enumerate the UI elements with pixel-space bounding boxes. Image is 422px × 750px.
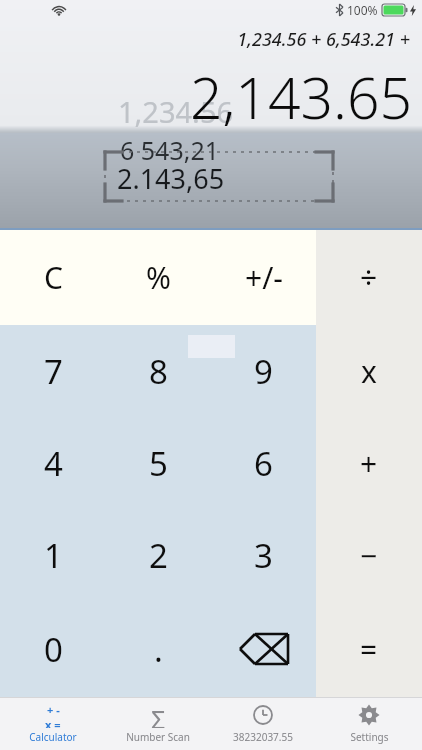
staticText: 9 [254, 349, 273, 394]
staticText: 2,143.65 [0, 58, 412, 136]
button[interactable]: x [316, 325, 422, 417]
staticText: 2 [149, 533, 168, 578]
staticText: . [154, 627, 163, 672]
staticText: 1,234.56 [118, 92, 234, 131]
staticText: 3 [254, 533, 273, 578]
staticText: − [360, 535, 378, 576]
button[interactable]: 4 [0, 417, 106, 509]
button[interactable]: % [106, 230, 211, 325]
button[interactable]: = [316, 601, 422, 697]
button[interactable]: 3 [211, 509, 316, 601]
staticText: 0 [44, 627, 63, 672]
staticText: C [44, 257, 63, 298]
staticText: % [146, 257, 171, 298]
button[interactable]: C [0, 230, 106, 325]
staticText: 8 [149, 349, 168, 394]
staticText: 1,234.56 + 6,543.21 + [0, 27, 410, 52]
staticText: +/- [245, 257, 283, 298]
staticText: 1 [44, 533, 63, 578]
staticText: 38232037.55 [233, 730, 293, 744]
button[interactable]: 5 [106, 417, 211, 509]
staticText: Calculator [29, 730, 77, 744]
staticText: ÷ [360, 257, 378, 298]
staticText: + [360, 443, 378, 484]
staticText: 2.143,65 [117, 160, 225, 197]
button[interactable]: Settings [316, 697, 422, 750]
button[interactable]: Backspace [211, 601, 316, 697]
staticText: x = [45, 717, 61, 728]
button[interactable]: 7 [0, 325, 106, 417]
button[interactable]: 0 [0, 601, 106, 697]
staticText: 6 543,21 [120, 133, 220, 167]
staticText: Settings [350, 730, 389, 744]
staticText: 7 [44, 349, 63, 394]
staticText: 100% [347, 2, 378, 18]
staticText: 4 [44, 441, 63, 486]
button[interactable]: +/- [211, 230, 316, 325]
staticText: x [361, 351, 377, 392]
button[interactable]: 8 [106, 325, 211, 417]
staticText: Number Scan [126, 730, 190, 744]
button[interactable]: 6 [211, 417, 316, 509]
staticText: Σ [151, 702, 166, 728]
button[interactable]: ÷ [316, 230, 422, 325]
staticText: = [360, 629, 378, 670]
button[interactable]: − [316, 509, 422, 601]
button[interactable]: + - [0, 697, 105, 750]
button[interactable]: 38232037.55 [210, 697, 316, 750]
staticText: 5 [149, 441, 168, 486]
button[interactable]: Σ [105, 697, 210, 750]
button[interactable]: 2 [106, 509, 211, 601]
staticText: + - [47, 702, 60, 717]
staticText: 6 [254, 441, 273, 486]
button[interactable]: + [316, 417, 422, 509]
button[interactable]: 1 [0, 509, 106, 601]
button[interactable]: . [106, 601, 211, 697]
button[interactable]: 9 [211, 325, 316, 417]
